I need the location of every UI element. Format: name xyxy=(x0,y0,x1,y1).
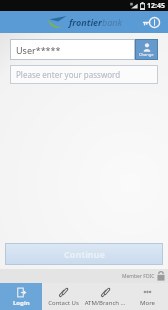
button[interactable]: Login xyxy=(0,283,42,310)
staticText: Login xyxy=(13,299,30,307)
button[interactable]: Change xyxy=(135,39,158,60)
button[interactable]: User***** xyxy=(10,39,135,60)
button[interactable]: Please enter your password xyxy=(10,65,158,84)
staticText: Continue xyxy=(64,248,105,260)
staticText: Contact Us xyxy=(48,299,79,307)
staticText: Change xyxy=(139,52,154,57)
staticText: Please enter your password xyxy=(16,69,121,80)
staticText: frontier xyxy=(69,16,102,28)
button[interactable]: Contact Us xyxy=(42,283,84,310)
button[interactable]: ATM/Branch L... xyxy=(84,283,126,310)
button[interactable]: More xyxy=(126,283,168,310)
staticText: More xyxy=(140,299,155,307)
button[interactable]: Rates xyxy=(142,13,160,31)
staticText: bank xyxy=(102,16,122,28)
staticText: User***** xyxy=(16,44,61,56)
staticText: ATM/Branch L... xyxy=(84,299,126,307)
staticText: 12:45 xyxy=(147,1,165,11)
button[interactable]: Continue xyxy=(5,243,163,265)
staticText: Member FDIC xyxy=(122,273,155,280)
